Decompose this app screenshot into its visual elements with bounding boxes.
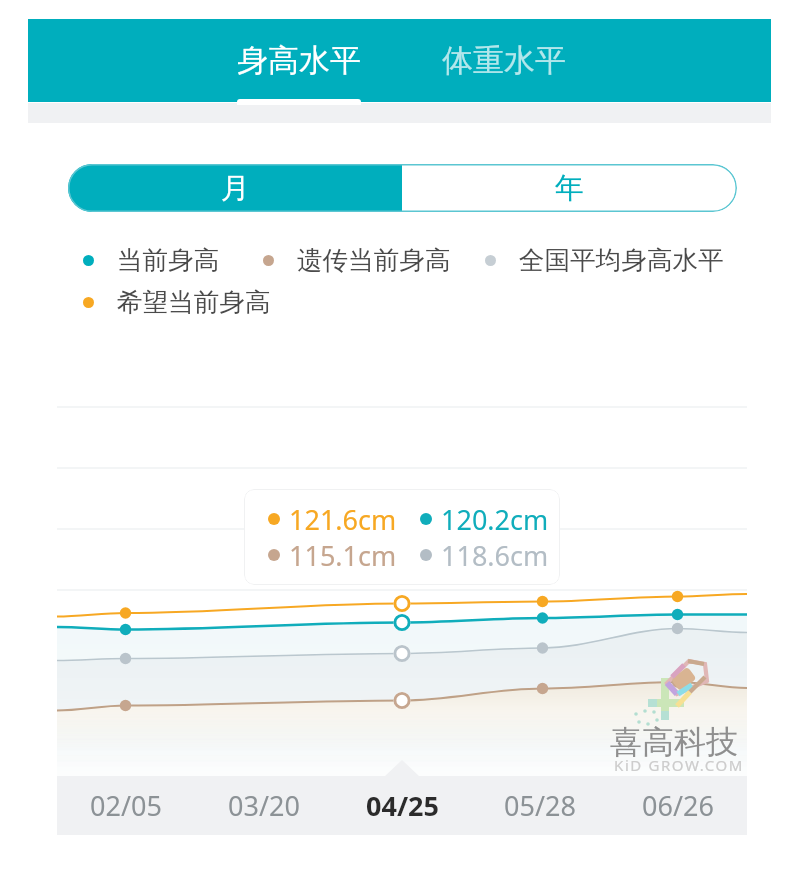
staticText: 04/25: [366, 787, 439, 824]
staticText: 喜高科技: [610, 722, 738, 762]
staticText: 02/05: [90, 787, 162, 824]
staticText: 身高水平: [237, 41, 361, 80]
staticText: 03/20: [228, 787, 300, 824]
staticText: 120.2cm: [441, 501, 549, 537]
button[interactable]: 03/20: [195, 776, 333, 835]
staticText: 体重水平: [442, 41, 566, 80]
button[interactable]: 月: [68, 164, 402, 212]
staticText: 121.6cm: [289, 501, 397, 537]
staticText: 遗传当前身高: [297, 244, 451, 276]
staticText: 全国平均身高水平: [519, 244, 724, 276]
button[interactable]: 体重水平: [414, 19, 594, 102]
button[interactable]: 04/25: [333, 776, 471, 835]
other: KidGrow logo watermark: [630, 650, 726, 736]
button[interactable]: 遗传当前身高: [257, 243, 457, 277]
staticText: 115.1cm: [289, 537, 397, 573]
button[interactable]: 希望当前身高: [77, 285, 277, 319]
button[interactable]: 身高水平: [209, 19, 389, 102]
staticText: 年: [555, 170, 584, 207]
staticText: 希望当前身高: [117, 286, 271, 318]
button[interactable]: 02/05: [57, 776, 195, 835]
staticText: 当前身高: [117, 244, 220, 276]
staticText: KiD GROW.COM: [614, 755, 744, 775]
button[interactable]: 全国平均身高水平: [479, 243, 730, 277]
staticText: 118.6cm: [441, 537, 549, 573]
staticText: 06/26: [642, 787, 714, 824]
button[interactable]: 当前身高: [77, 243, 226, 277]
button[interactable]: 年: [402, 164, 737, 212]
staticText: 月: [221, 170, 250, 207]
button[interactable]: 05/28: [471, 776, 609, 835]
staticText: 05/28: [504, 787, 576, 824]
button[interactable]: 06/26: [609, 776, 747, 835]
